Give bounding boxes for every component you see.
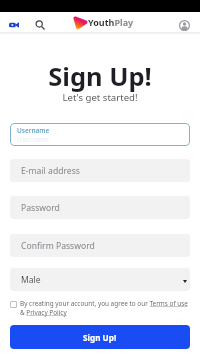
staticText: Username (17, 135, 49, 144)
staticText: YouthPlay (88, 16, 134, 28)
button[interactable]: Confirm Password (10, 234, 190, 257)
staticText: Password (21, 202, 60, 214)
staticText: Male (21, 274, 41, 286)
staticText: Sign Up! (0, 59, 200, 94)
staticText: E-mail address (21, 165, 80, 177)
button[interactable]: Password (10, 196, 190, 219)
staticText: By creating your account, you agree to o… (20, 299, 190, 317)
button[interactable]: E-mail address (10, 159, 190, 182)
button[interactable]: Accept terms and conditions (10, 301, 17, 308)
staticText: Sign Up! (83, 332, 117, 343)
staticText: Confirm Password (21, 240, 95, 252)
staticText: Let's get started! (0, 91, 200, 104)
button[interactable]: Username (10, 123, 190, 146)
button[interactable]: Account (176, 17, 192, 33)
button[interactable]: Start video call (6, 17, 22, 33)
staticText: Username (17, 126, 50, 135)
button[interactable]: Male (10, 268, 190, 291)
button[interactable]: Search (32, 17, 48, 33)
button[interactable]: Sign Up! (10, 325, 190, 349)
